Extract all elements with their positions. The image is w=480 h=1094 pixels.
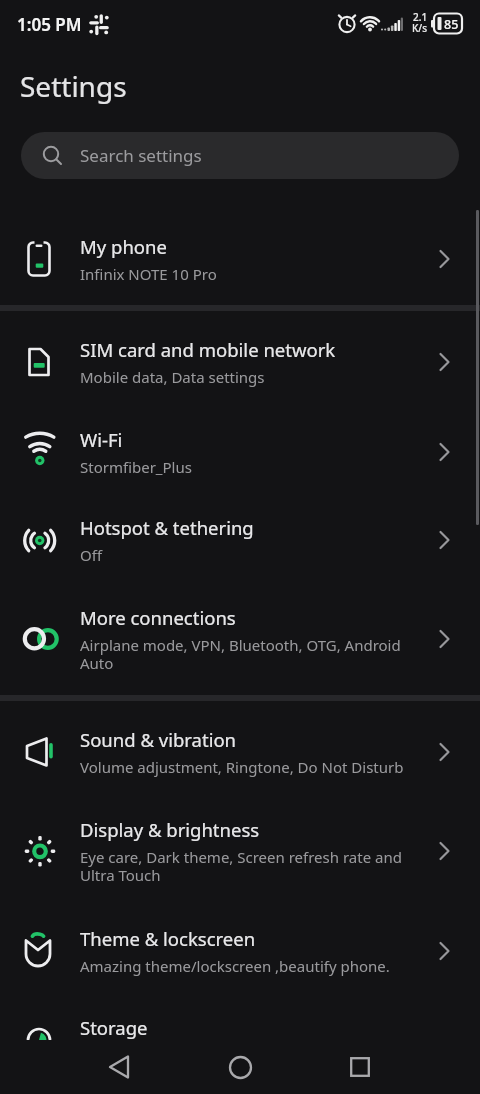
button[interactable]: Sound & vibration bbox=[0, 707, 480, 797]
staticText: SIM card and mobile network bbox=[80, 337, 336, 362]
staticText: 2.1 bbox=[413, 10, 428, 24]
staticText: K/s bbox=[412, 21, 428, 35]
button[interactable]: Theme & lockscreen bbox=[0, 906, 480, 996]
staticText: Wi-Fi bbox=[80, 427, 123, 452]
staticText: Search settings bbox=[80, 144, 202, 167]
staticText: 85 bbox=[444, 16, 459, 33]
staticText: Theme & lockscreen bbox=[80, 926, 256, 951]
button[interactable]: Hotspot & tethering bbox=[0, 495, 480, 585]
button[interactable]: More connections bbox=[0, 587, 480, 691]
button[interactable]: Search settings bbox=[21, 132, 459, 179]
staticText: My phone bbox=[80, 234, 167, 259]
staticText: Infinix NOTE 10 Pro bbox=[80, 264, 217, 284]
staticText: Stormfiber_Plus bbox=[80, 457, 192, 477]
button[interactable]: SIM card and mobile network bbox=[0, 317, 480, 407]
staticText: Mobile data, Data settings bbox=[80, 367, 265, 387]
staticText: 1:05 PM bbox=[17, 13, 82, 36]
staticText: More connections bbox=[80, 605, 236, 630]
staticText: Volume adjustment, Ringtone, Do Not Dist… bbox=[80, 757, 404, 777]
staticText: Sound & vibration bbox=[80, 727, 237, 752]
staticText: Hotspot & tethering bbox=[80, 515, 254, 540]
button[interactable] bbox=[336, 1043, 384, 1091]
staticText: Storage bbox=[80, 1015, 148, 1040]
button[interactable]: My phone bbox=[0, 214, 480, 304]
button[interactable] bbox=[216, 1043, 264, 1091]
button[interactable] bbox=[96, 1043, 144, 1091]
button[interactable]: Storage bbox=[0, 995, 480, 1085]
button[interactable]: Display & brightness bbox=[0, 799, 480, 903]
staticText: Amazing theme/lockscreen ,beautify phone… bbox=[80, 956, 390, 976]
staticText: Airplane mode, VPN, Bluetooth, OTG, Andr… bbox=[80, 635, 401, 674]
staticText: Eye care, Dark theme, Screen refresh rat… bbox=[80, 847, 402, 886]
button[interactable]: Wi-Fi bbox=[0, 407, 480, 497]
staticText: Off bbox=[80, 545, 103, 565]
staticText: Settings bbox=[20, 67, 127, 105]
staticText: Display & brightness bbox=[80, 817, 260, 842]
